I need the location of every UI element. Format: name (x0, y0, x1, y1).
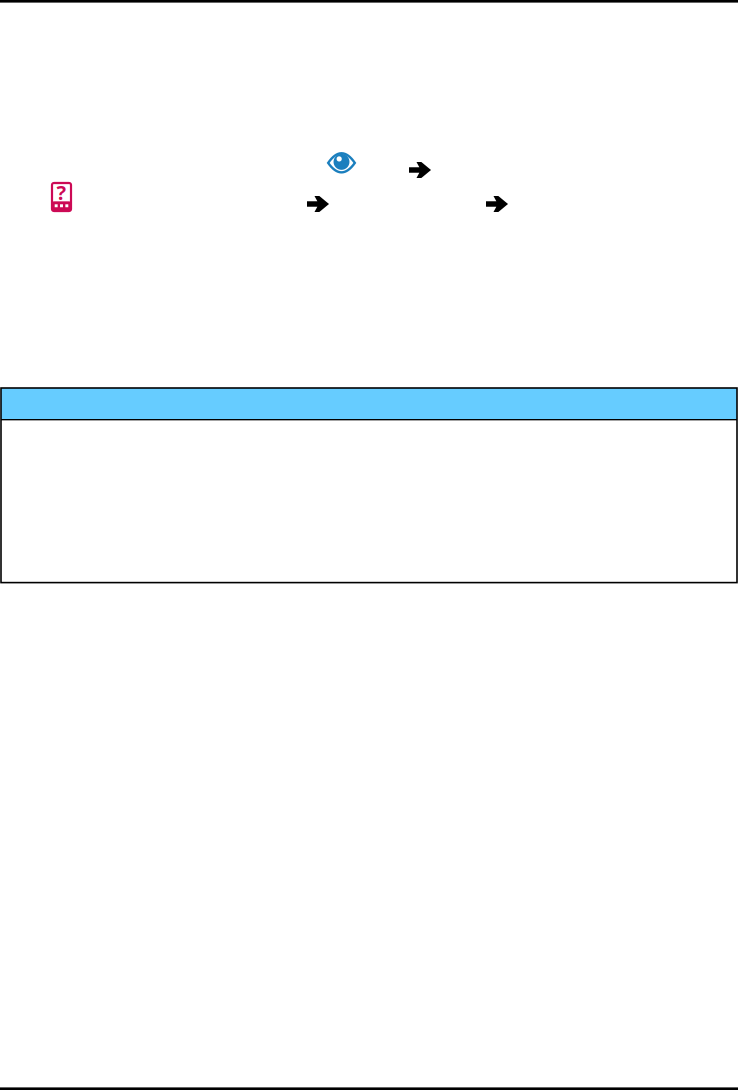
button[interactable]: Next (486, 196, 508, 212)
button[interactable]: Preview (327, 152, 356, 173)
staticText: ? (56, 179, 66, 205)
button[interactable]: Next (307, 196, 329, 212)
button[interactable]: Continue (409, 162, 431, 178)
button[interactable]: Help (52, 183, 71, 211)
